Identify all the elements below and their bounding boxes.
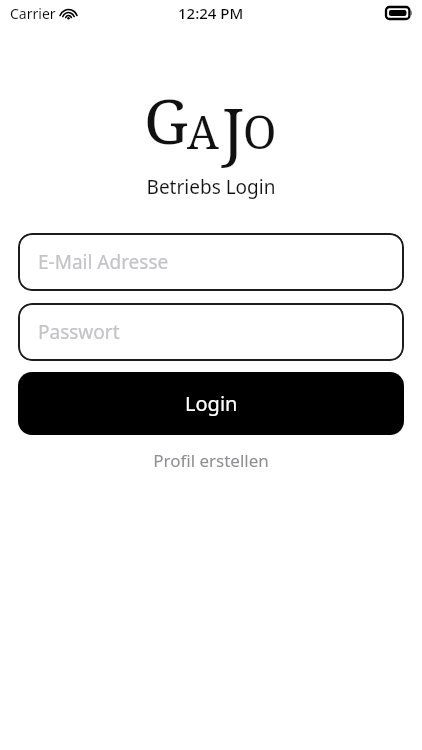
- button[interactable]: Login: [18, 372, 404, 435]
- staticText: 12:24 PM: [178, 3, 244, 23]
- staticText: J: [222, 87, 245, 171]
- staticText: E-Mail Adresse: [38, 249, 169, 275]
- staticText: Login: [185, 390, 238, 417]
- staticText: G: [144, 78, 189, 162]
- staticText: Carrier: [10, 4, 56, 23]
- staticText: A: [187, 101, 219, 162]
- staticText: Passwort: [38, 319, 120, 345]
- button[interactable]: Passwort: [18, 303, 404, 361]
- staticText: Profil erstellen: [153, 449, 269, 472]
- staticText: Betriebs Login: [0, 174, 422, 200]
- staticText: O: [243, 101, 277, 162]
- button[interactable]: E-Mail Adresse: [18, 233, 404, 291]
- button[interactable]: Profil erstellen: [0, 443, 422, 478]
